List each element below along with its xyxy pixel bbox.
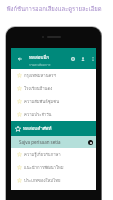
staticText: Sajva perisaan setia [19,139,61,145]
button[interactable]: ประเภทของใหม่ไทย [11,174,96,187]
button[interactable]: ความสัมพันธ์ชุมชน [11,95,96,108]
staticText: รายละเอียดการ [29,62,51,67]
button[interactable]: ความประจำวัน [11,108,96,121]
button[interactable]: Back [11,48,96,69]
button[interactable]: ความรู้เกี่ยวกับภาษา [11,148,96,161]
button[interactable]: Add [88,140,93,145]
button[interactable]: ทดสอบคำศัพท์ [11,121,96,136]
staticText: โรงเรียนบ้านดง [24,85,53,92]
staticText: ประเภทของใหม่ไทย [24,177,61,184]
button[interactable]: Back [16,55,24,63]
button[interactable]: โรงเรียนบ้านดง [11,82,96,95]
staticText: ทดสอบอีก [29,54,50,61]
staticText: ความรู้เกี่ยวกับภาษา [24,151,61,158]
button[interactable]: Account [79,55,87,63]
staticText: ฟังก์ชันการออกเสียงและดูรายละเอียด [6,4,102,13]
staticText: ทดสอบคำศัพท์ [23,125,52,132]
staticText: ความประจำวัน [24,111,52,118]
staticText: กรุงเทพมหานครฯ [24,72,56,79]
staticText: แนะนำการพัฒนาใหม่ [24,164,64,171]
button[interactable]: Sajva perisaan setia [11,136,96,148]
button[interactable]: Settings [69,55,77,63]
button[interactable]: More options [90,56,96,62]
staticText: ความสัมพันธ์ชุมชน [24,98,60,105]
button[interactable]: กรุงเทพมหานครฯ [11,69,96,82]
button[interactable]: แนะนำการพัฒนาใหม่ [11,161,96,174]
